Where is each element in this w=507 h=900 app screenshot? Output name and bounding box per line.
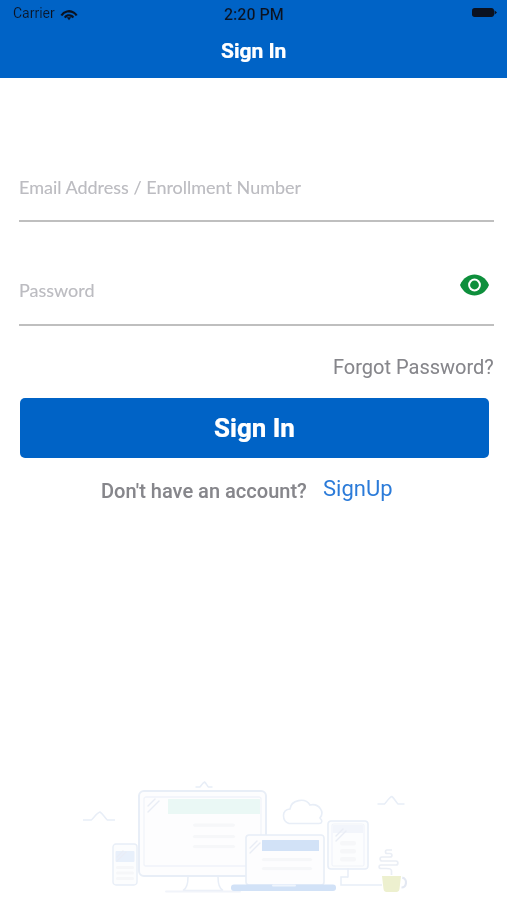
staticText: 2:20 PM <box>224 5 284 24</box>
staticText: Carrier <box>13 5 55 21</box>
button[interactable]: Forgot Password? <box>333 355 494 378</box>
staticText: Don't have an account? <box>101 479 307 502</box>
staticText: Email Address / Enrollment Number <box>19 176 302 198</box>
button[interactable]: SignUp <box>323 476 393 502</box>
staticText: Sign In <box>214 413 295 443</box>
button[interactable]: Sign In <box>20 398 489 458</box>
staticText: Sign In <box>221 39 287 64</box>
staticText: Forgot Password? <box>333 355 494 378</box>
staticText: SignUp <box>323 476 393 502</box>
button[interactable]: Show password <box>457 270 491 300</box>
staticText: Password <box>19 279 95 301</box>
